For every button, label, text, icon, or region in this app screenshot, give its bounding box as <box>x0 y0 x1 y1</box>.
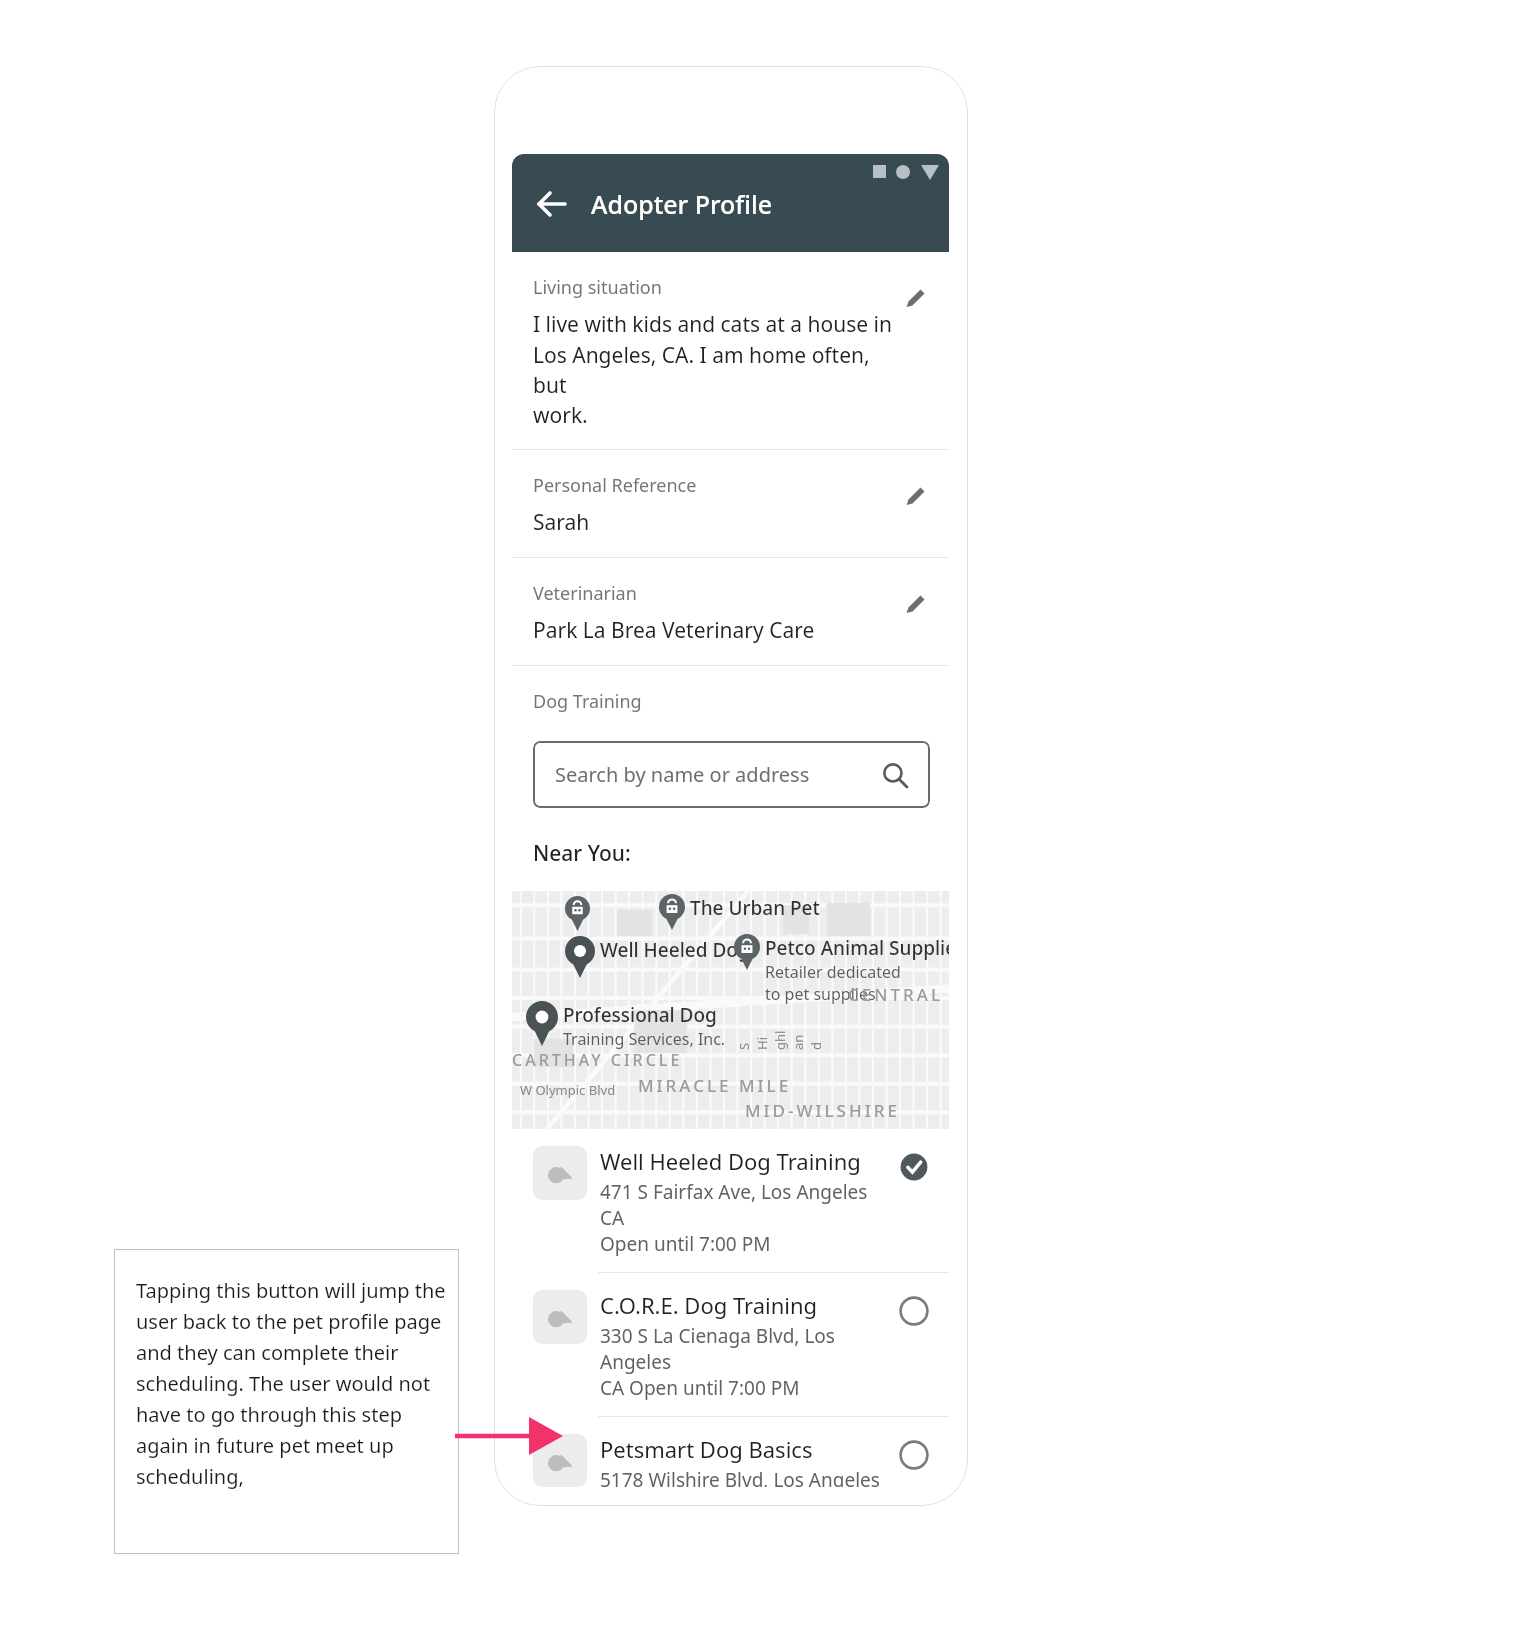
staticText: Veterinarian <box>533 581 637 606</box>
staticText: 330 S La Cienaga Blvd, Los Angeles <box>600 1323 889 1375</box>
button[interactable]: Select Petsmart Dog Basics <box>897 1438 931 1472</box>
button[interactable]: Edit Veterinarian <box>895 581 935 621</box>
staticText: Living situation <box>533 275 662 300</box>
staticText: CENTRAL L <box>848 983 949 1006</box>
button[interactable]: Selected Well Heeled Dog Training <box>897 1150 931 1184</box>
button[interactable]: Back <box>530 182 574 226</box>
staticText: Petco Animal Supplies <box>765 935 949 961</box>
button[interactable]: Petsmart Dog Basics <box>512 1417 949 1502</box>
staticText: S Highland Ave <box>735 1030 821 1050</box>
staticText: to pet supplies <box>765 983 876 1005</box>
staticText: Training Services, Inc. <box>563 1028 726 1050</box>
button[interactable]: Search by name or address <box>533 741 930 808</box>
staticText: Well Heeled Dog Training <box>600 1146 861 1176</box>
staticText: Near You: <box>533 839 631 868</box>
staticText: CA Open until 7:00 PM <box>600 1375 800 1401</box>
staticText: The Urban Pet <box>690 895 820 921</box>
button[interactable]: Edit Personal Reference <box>895 473 935 513</box>
staticText: MIRACLE MILE <box>638 1074 792 1097</box>
staticText: Park La Brea Veterinary Care <box>533 616 815 645</box>
button[interactable]: Well Heeled Dog Training <box>512 1129 949 1272</box>
button[interactable]: Personal Reference <box>512 450 949 557</box>
staticText: Retailer dedicated <box>765 961 901 983</box>
staticText: Well Heeled Dog <box>600 937 750 963</box>
staticText: Petsmart Dog Basics <box>600 1434 813 1464</box>
staticText: Adopter Profile <box>591 187 773 221</box>
staticText: Search by name or address <box>555 761 882 788</box>
staticText: Sarah <box>533 508 590 537</box>
staticText: C.O.R.E. Dog Training <box>600 1290 818 1320</box>
button[interactable]: Edit Living situation <box>895 275 935 315</box>
button[interactable]: C.O.R.E. Dog Training <box>512 1273 949 1416</box>
staticText: Dog Training <box>533 689 642 714</box>
button[interactable]: Veterinarian <box>512 558 949 665</box>
button[interactable]: Select C.O.R.E. Dog Training <box>897 1294 931 1328</box>
button[interactable]: Living situation <box>512 252 949 449</box>
staticText: Tapping this button will jump the user b… <box>136 1277 449 1490</box>
staticText: CARTHAY CIRCLE <box>512 1049 683 1071</box>
staticText: MID-WILSHIRE <box>745 1099 900 1122</box>
staticText: Personal Reference <box>533 473 697 498</box>
staticText: Professional Dog <box>563 1002 717 1028</box>
staticText: 471 S Fairfax Ave, Los Angeles CA <box>600 1179 889 1231</box>
staticText: I live with kids and cats at a house in … <box>533 310 895 429</box>
staticText: Open until 7:00 PM <box>600 1231 771 1257</box>
staticText: 5178 Wilshire Blvd, Los Angeles CA <box>600 1467 889 1487</box>
staticText: W Olympic Blvd <box>520 1081 616 1099</box>
